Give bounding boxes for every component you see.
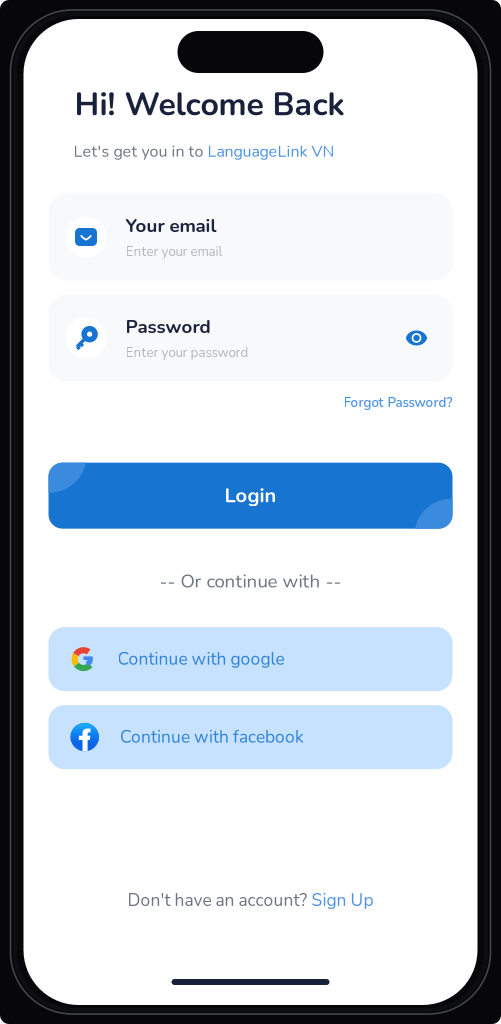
button[interactable]: Continue with google	[48, 627, 452, 691]
staticText: Enter your password	[125, 344, 248, 362]
staticText: -- Or continue with --	[159, 569, 341, 594]
staticText: Let's get you in to	[73, 141, 207, 162]
button[interactable]: Login	[48, 463, 452, 529]
button[interactable]: Continue with facebook	[48, 705, 452, 769]
staticText: LanguageLink VN	[207, 141, 334, 162]
staticText: Enter your email	[125, 243, 222, 261]
staticText: Password	[125, 314, 210, 340]
button[interactable]: Show password	[399, 321, 433, 355]
staticText: Hi! Welcome Back	[74, 83, 344, 127]
staticText: Sign Up	[311, 888, 373, 912]
staticText: Your email	[125, 213, 216, 239]
staticText: Forgot Password?	[343, 393, 452, 412]
staticText: Continue with facebook	[120, 725, 304, 749]
staticText: Login	[224, 482, 276, 509]
staticText: Continue with google	[117, 647, 284, 671]
staticText: Don't have an account?	[127, 888, 311, 912]
button[interactable]: Sign Up	[311, 888, 373, 912]
button[interactable]: Forgot Password?	[343, 393, 452, 412]
